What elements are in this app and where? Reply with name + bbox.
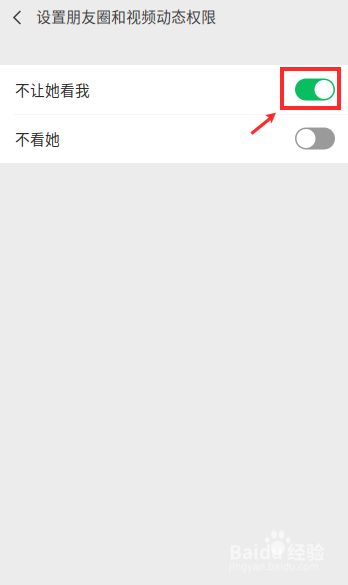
- button[interactable]: 不让她看我: [0, 65, 348, 114]
- button[interactable]: Back: [0, 0, 348, 35]
- staticText: 不看她: [15, 128, 60, 149]
- staticText: 不让她看我: [15, 79, 90, 100]
- staticText: Baidu 经验: [229, 537, 325, 564]
- button[interactable]: 不看她: [0, 114, 348, 163]
- staticText: 设置朋友圈和视频动态权限: [36, 5, 216, 27]
